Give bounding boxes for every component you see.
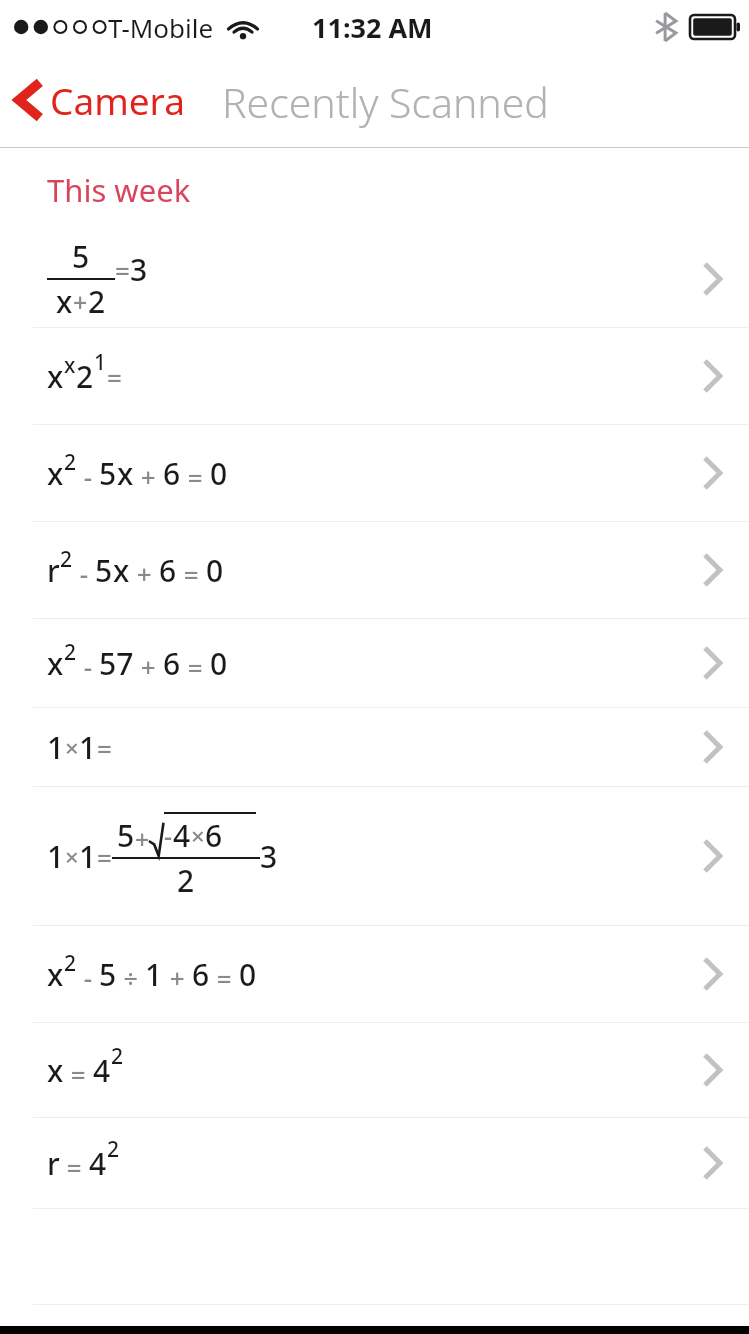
button[interactable]: r [0, 522, 749, 618]
staticText: r [47, 550, 60, 591]
staticText: = [181, 649, 210, 684]
staticText: 5 [95, 550, 113, 591]
staticText: This week [47, 169, 191, 211]
staticText: 2 [177, 860, 195, 901]
staticText: 4 [89, 1143, 107, 1184]
staticText: + [163, 960, 192, 995]
staticText: 2 [64, 949, 77, 978]
staticText: + [135, 822, 150, 856]
staticText: Recently Scanned [222, 74, 549, 130]
staticText: 2 [76, 356, 94, 397]
staticText: = [97, 839, 112, 874]
other: Open [701, 262, 723, 296]
staticText: 3 [130, 249, 148, 290]
staticText: = [210, 960, 239, 995]
staticText: = [60, 1149, 89, 1184]
staticText: - [77, 649, 99, 684]
staticText: r [47, 1143, 60, 1184]
button[interactable]: x [0, 619, 749, 707]
staticText: x [47, 453, 64, 494]
button[interactable]: r [0, 1118, 749, 1208]
staticText: 5 [99, 954, 117, 995]
other: Open [701, 456, 723, 490]
staticText: x [47, 643, 64, 684]
staticText: 11:32 AM [312, 9, 433, 46]
staticText: 0 [206, 550, 224, 591]
staticText: x [56, 281, 73, 322]
staticText: + [73, 285, 88, 319]
staticText: 6 [163, 453, 181, 494]
staticText: = [115, 252, 130, 287]
staticText: 5 [99, 453, 117, 494]
staticText: 1 [47, 836, 65, 877]
staticText: = [181, 459, 210, 494]
staticText: - [77, 960, 99, 995]
staticText: 2 [88, 281, 106, 322]
staticText: 1 [94, 348, 107, 377]
staticText: 3 [260, 836, 278, 877]
button[interactable]: x [0, 425, 749, 521]
staticText: x [47, 356, 64, 397]
staticText: + [130, 556, 159, 591]
staticText: x [113, 550, 130, 591]
staticText: × [65, 840, 79, 873]
staticText: 5 [117, 815, 135, 856]
button[interactable]: x [0, 328, 749, 424]
staticText: T-Mobile [108, 10, 214, 45]
staticText: 1 [145, 954, 163, 995]
staticText: 1 [79, 727, 97, 768]
staticText: 2 [64, 448, 77, 477]
staticText: 6 [163, 643, 181, 684]
staticText: x [117, 453, 134, 494]
staticText: ÷ [117, 961, 145, 995]
staticText: × [191, 819, 205, 852]
button[interactable]: 1 [0, 708, 749, 786]
other: Open [701, 359, 723, 393]
staticText: = [64, 1056, 93, 1091]
staticText: 57 [99, 643, 134, 684]
other: Open [701, 957, 723, 991]
staticText: Camera [50, 75, 185, 125]
staticText: + [134, 649, 163, 684]
staticText: 4 [173, 815, 191, 856]
staticText: 5 [72, 236, 90, 277]
staticText: x [64, 351, 76, 380]
staticText: 0 [239, 954, 257, 995]
staticText: 0 [210, 453, 228, 494]
other: Open [701, 553, 723, 587]
staticText: 1 [79, 836, 97, 877]
staticText: - [164, 819, 173, 853]
staticText: = [97, 730, 112, 765]
button[interactable]: x [0, 926, 749, 1022]
staticText: 2 [64, 638, 77, 667]
staticText: x [47, 1050, 64, 1091]
staticText: 4 [93, 1050, 111, 1091]
button[interactable]: 1 [0, 787, 749, 925]
staticText: = [107, 359, 122, 394]
other: Open [701, 1053, 723, 1087]
staticText: - [77, 459, 99, 494]
button[interactable]: 5 [0, 231, 749, 327]
other: Open [701, 646, 723, 680]
staticText: 1 [47, 727, 65, 768]
staticText: 2 [107, 1135, 120, 1164]
staticText: 0 [210, 643, 228, 684]
staticText: 2 [60, 545, 73, 574]
staticText: 6 [192, 954, 210, 995]
staticText: 2 [111, 1042, 124, 1071]
staticText: + [134, 459, 163, 494]
staticText: 6 [159, 550, 177, 591]
other: Open [701, 730, 723, 764]
other: Open [701, 1146, 723, 1180]
staticText: x [47, 954, 64, 995]
staticText: 6 [205, 815, 223, 856]
staticText: × [65, 731, 79, 764]
staticText: - [73, 556, 95, 591]
button[interactable]: Camera [0, 69, 195, 131]
staticText: = [177, 556, 206, 591]
other: Open [701, 839, 723, 873]
button[interactable]: x [0, 1023, 749, 1117]
